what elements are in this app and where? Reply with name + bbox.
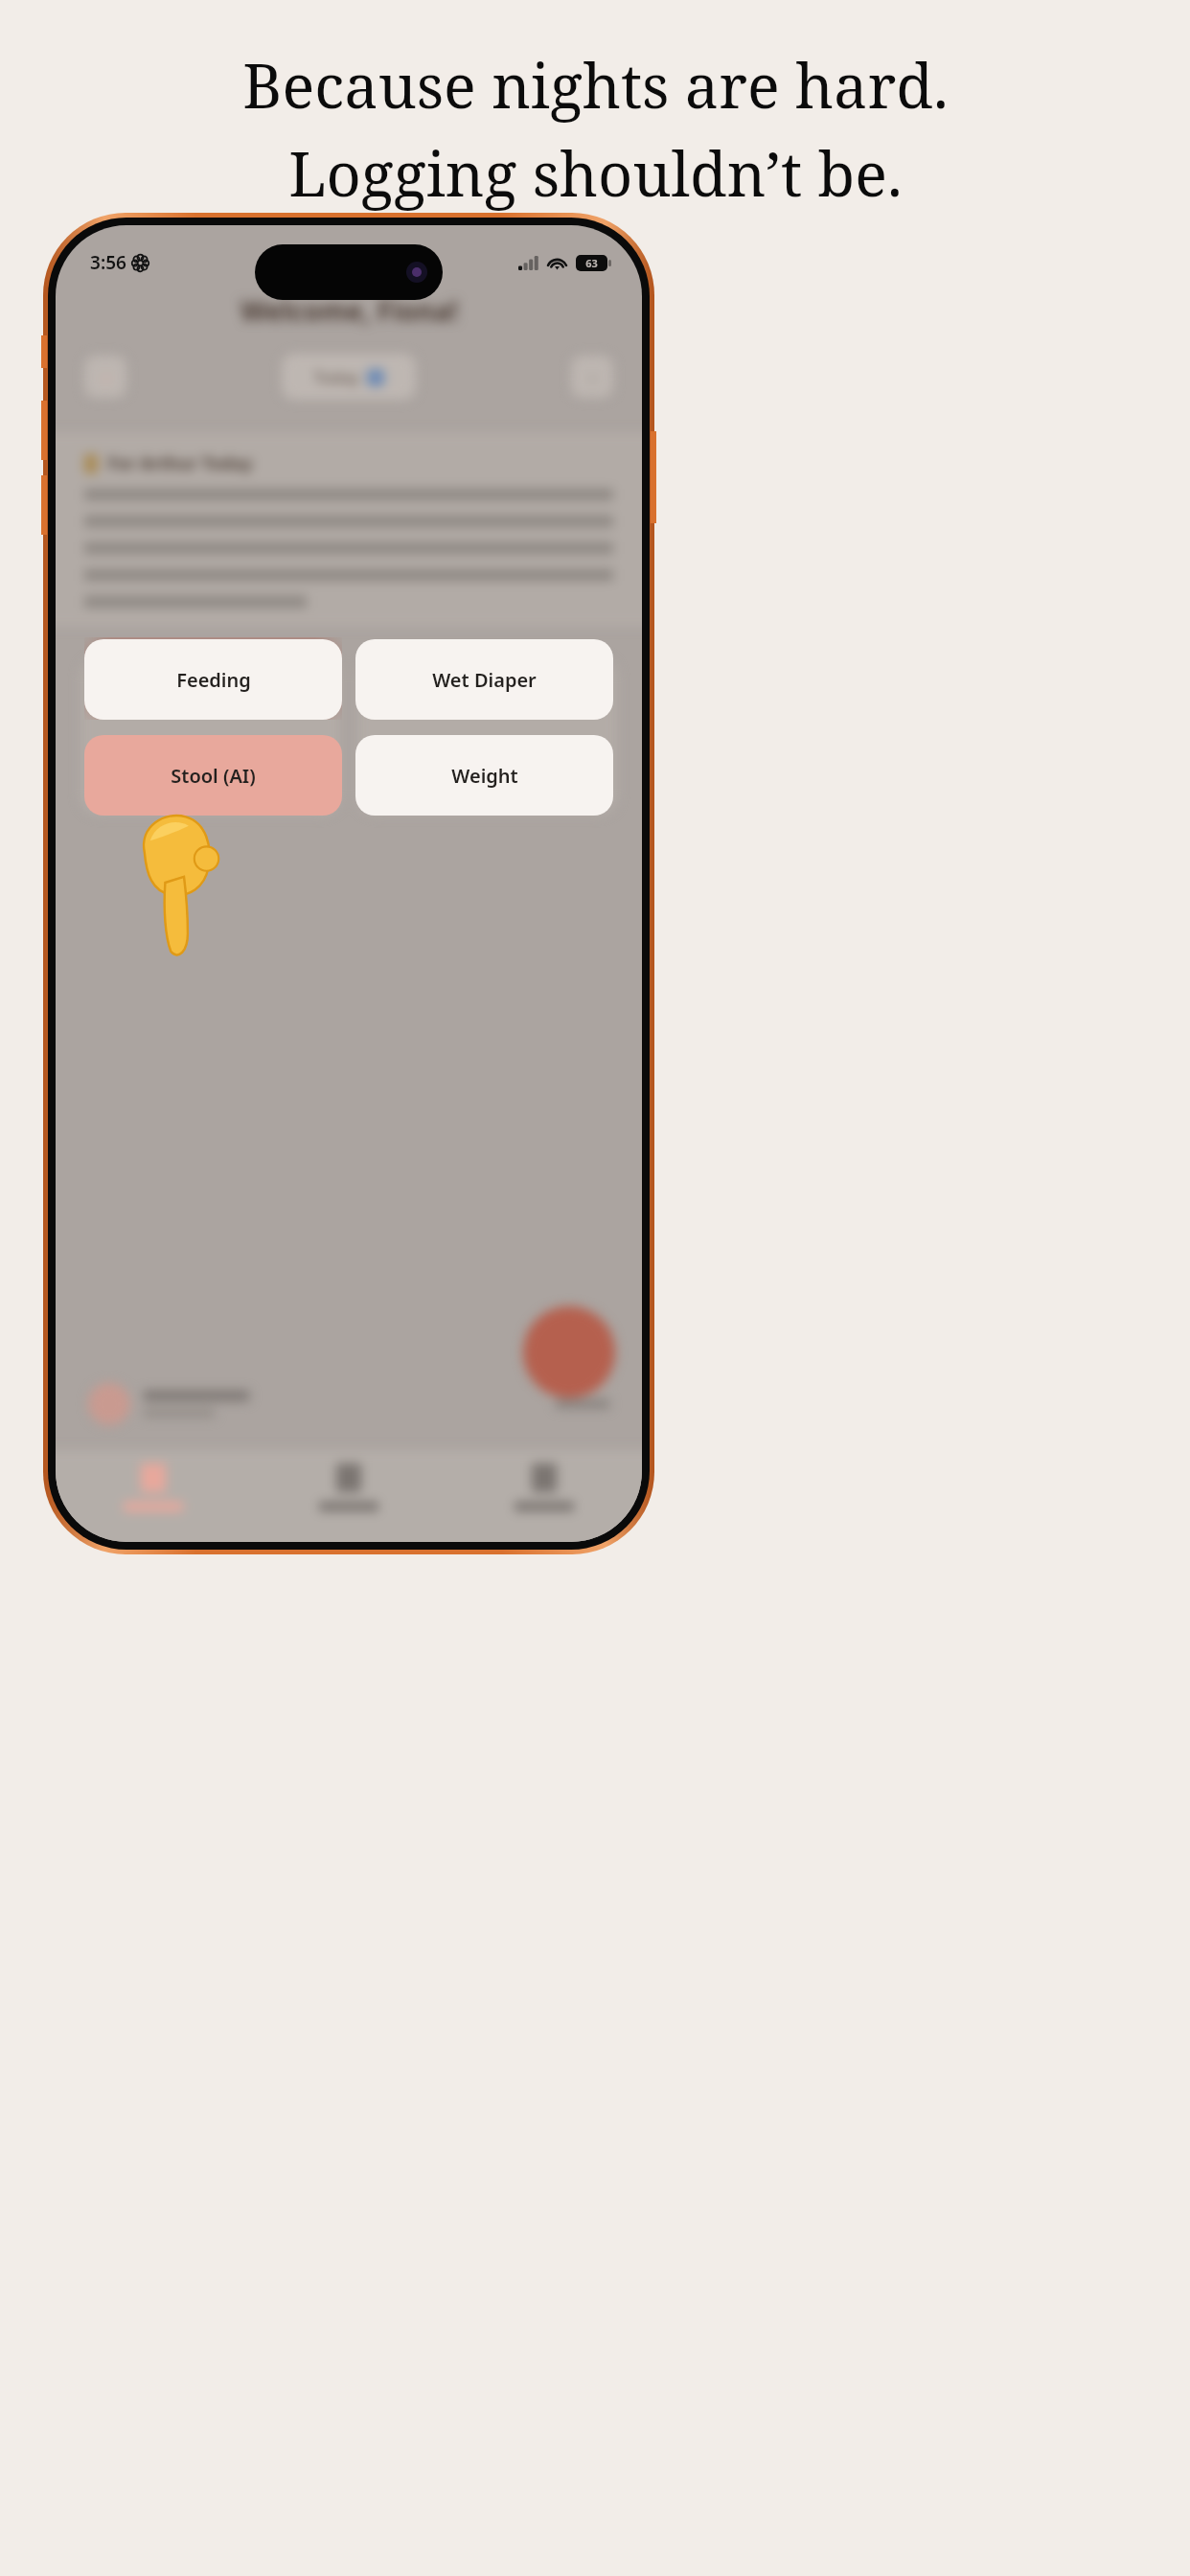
button[interactable]: Stool (AI) xyxy=(84,735,342,816)
staticText: Wet Diaper xyxy=(432,667,537,693)
staticText: Wet Diaper xyxy=(375,676,450,695)
staticText: Today xyxy=(313,366,359,388)
staticText: 63 xyxy=(585,256,598,270)
button[interactable]: Wet Diaper xyxy=(355,639,613,720)
staticText: Stool (AI) xyxy=(171,763,256,789)
button[interactable]: Feeding xyxy=(84,639,342,720)
staticText: Because nights are hard. xyxy=(242,44,949,126)
staticText: 3:56 xyxy=(90,250,126,275)
staticText: Weight xyxy=(451,763,518,789)
staticText: Logging shouldn’t be. xyxy=(288,132,903,215)
staticText: For Arthur Today xyxy=(107,451,253,475)
button[interactable]: Weight xyxy=(355,735,613,816)
staticText: Feeding xyxy=(176,667,251,693)
staticText: Welcome, Fiona! xyxy=(240,292,458,329)
